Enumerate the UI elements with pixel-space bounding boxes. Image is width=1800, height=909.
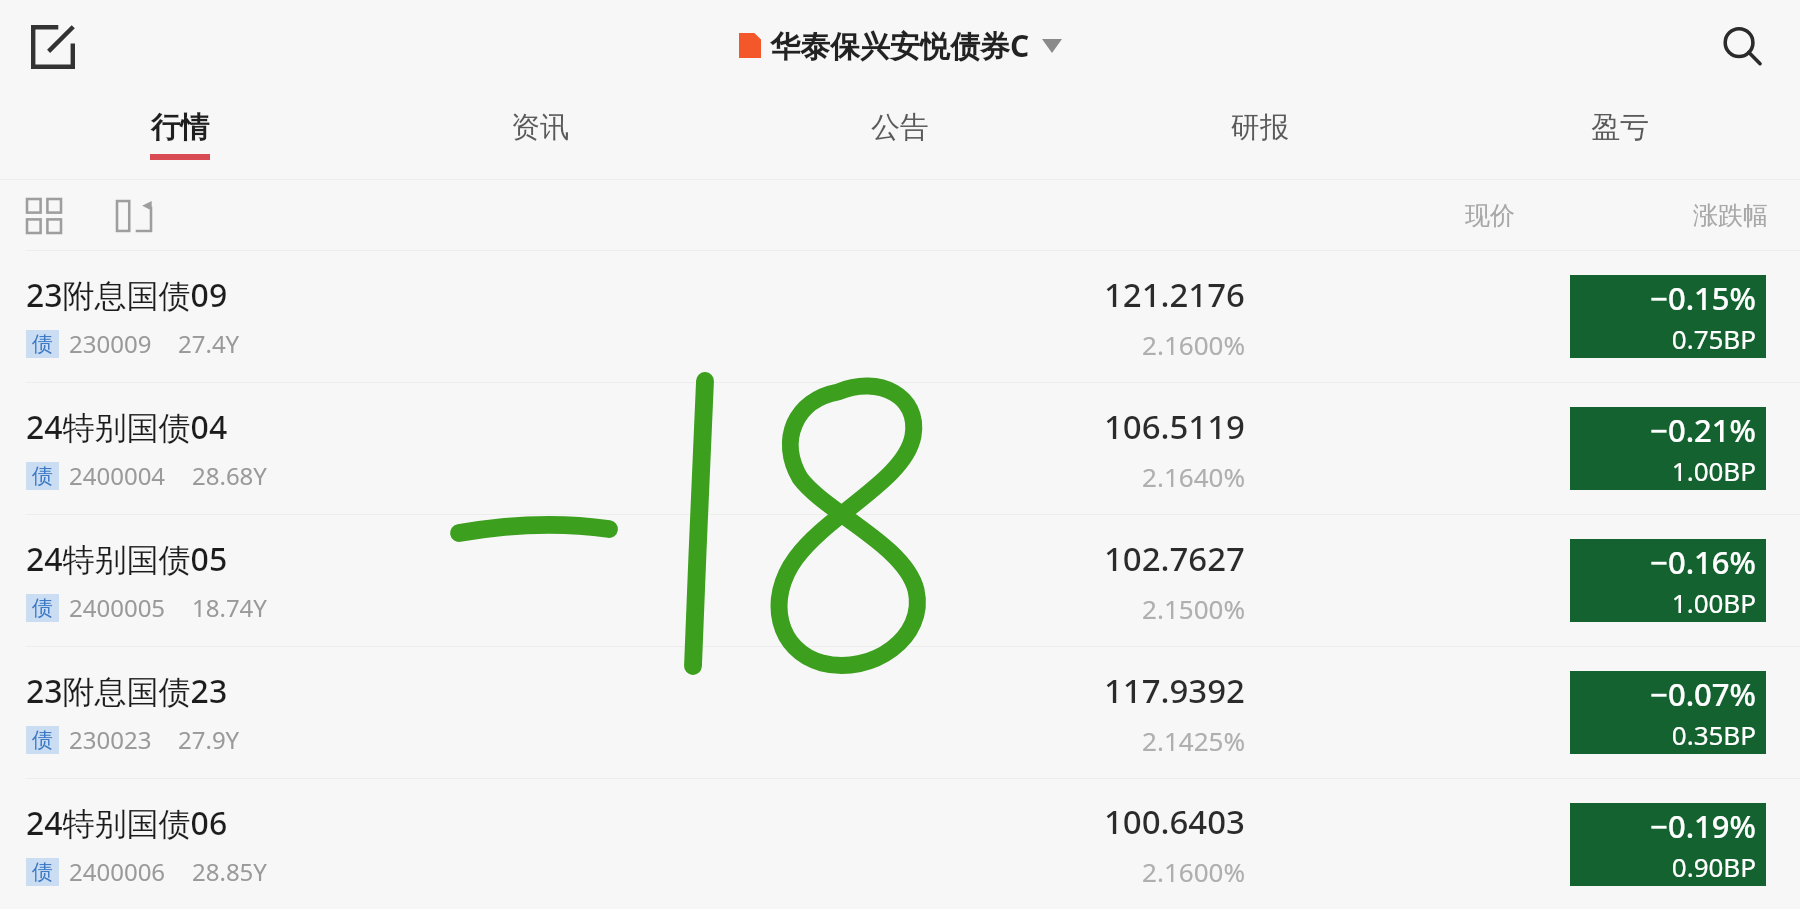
- button[interactable]: 盈亏: [1440, 95, 1800, 180]
- staticText: 0.75BP: [1671, 321, 1756, 356]
- staticText: 0.90BP: [1671, 849, 1756, 884]
- staticText: −0.19%: [1650, 805, 1756, 847]
- staticText: 23附息国债23: [26, 669, 228, 713]
- button[interactable]: Search: [1706, 10, 1778, 82]
- staticText: 230009: [69, 327, 152, 360]
- staticText: 1.00BP: [1671, 585, 1756, 620]
- staticText: 117.9392: [1103, 668, 1245, 713]
- button[interactable]: 24特别国债04: [0, 383, 1800, 514]
- button[interactable]: −0.16%: [1570, 539, 1766, 622]
- staticText: 债: [32, 859, 53, 885]
- staticText: 230023: [69, 723, 152, 756]
- button[interactable]: 24特别国债05: [0, 515, 1800, 646]
- staticText: 27.9Y: [178, 723, 240, 756]
- button[interactable]: −0.19%: [1570, 803, 1766, 886]
- staticText: 2.1600%: [1142, 327, 1245, 362]
- staticText: 盈亏: [1591, 109, 1649, 146]
- staticText: 现价: [1465, 200, 1515, 231]
- staticText: 106.5119: [1103, 404, 1245, 449]
- staticText: 24特别国债04: [26, 405, 228, 449]
- button[interactable]: 研报: [1080, 95, 1440, 180]
- staticText: 27.4Y: [178, 327, 240, 360]
- staticText: 2.1640%: [1142, 459, 1245, 494]
- staticText: 债: [32, 727, 53, 753]
- button[interactable]: 23附息国债23: [0, 647, 1800, 778]
- button[interactable]: 24特别国债06: [0, 779, 1800, 909]
- staticText: 121.2176: [1103, 272, 1245, 317]
- staticText: −0.16%: [1650, 541, 1756, 583]
- staticText: 行情: [151, 109, 209, 146]
- staticText: 华泰保兴安悦债券C: [770, 25, 1030, 66]
- staticText: 研报: [1231, 109, 1289, 146]
- staticText: 28.68Y: [192, 459, 267, 492]
- button[interactable]: Edit: [18, 12, 88, 82]
- staticText: −0.07%: [1650, 673, 1756, 715]
- staticText: 18.74Y: [192, 591, 267, 624]
- staticText: 2400004: [69, 459, 166, 492]
- staticText: 涨跌幅: [1693, 200, 1768, 231]
- button[interactable]: 23附息国债09: [0, 251, 1800, 382]
- staticText: 24特别国债06: [26, 801, 228, 845]
- button[interactable]: 资讯: [360, 95, 720, 180]
- button[interactable]: Sort: [114, 196, 154, 236]
- button[interactable]: −0.07%: [1570, 671, 1766, 754]
- button[interactable]: −0.21%: [1570, 407, 1766, 490]
- staticText: 2400006: [69, 855, 166, 888]
- staticText: 1.00BP: [1671, 453, 1756, 488]
- staticText: 2400005: [69, 591, 166, 624]
- staticText: 2.1600%: [1142, 854, 1245, 889]
- staticText: 债: [32, 463, 53, 489]
- staticText: 100.6403: [1103, 799, 1245, 844]
- staticText: 24特别国债05: [26, 537, 228, 581]
- staticText: −0.21%: [1650, 409, 1756, 451]
- staticText: 23附息国债09: [26, 273, 228, 317]
- staticText: 债: [32, 595, 53, 621]
- staticText: 资讯: [511, 109, 569, 146]
- staticText: 债: [32, 331, 53, 357]
- staticText: 2.1425%: [1142, 723, 1245, 758]
- button[interactable]: −0.15%: [1570, 275, 1766, 358]
- staticText: 0.35BP: [1671, 717, 1756, 752]
- staticText: 102.7627: [1103, 536, 1245, 581]
- button[interactable]: 华泰保兴安悦债券C: [739, 25, 1062, 66]
- staticText: −0.15%: [1650, 277, 1756, 319]
- staticText: 2.1500%: [1142, 591, 1245, 626]
- button[interactable]: 行情: [0, 95, 360, 180]
- staticText: 公告: [871, 109, 929, 146]
- button[interactable]: 公告: [720, 95, 1080, 180]
- staticText: 28.85Y: [192, 855, 267, 888]
- button[interactable]: Grid view: [24, 196, 64, 236]
